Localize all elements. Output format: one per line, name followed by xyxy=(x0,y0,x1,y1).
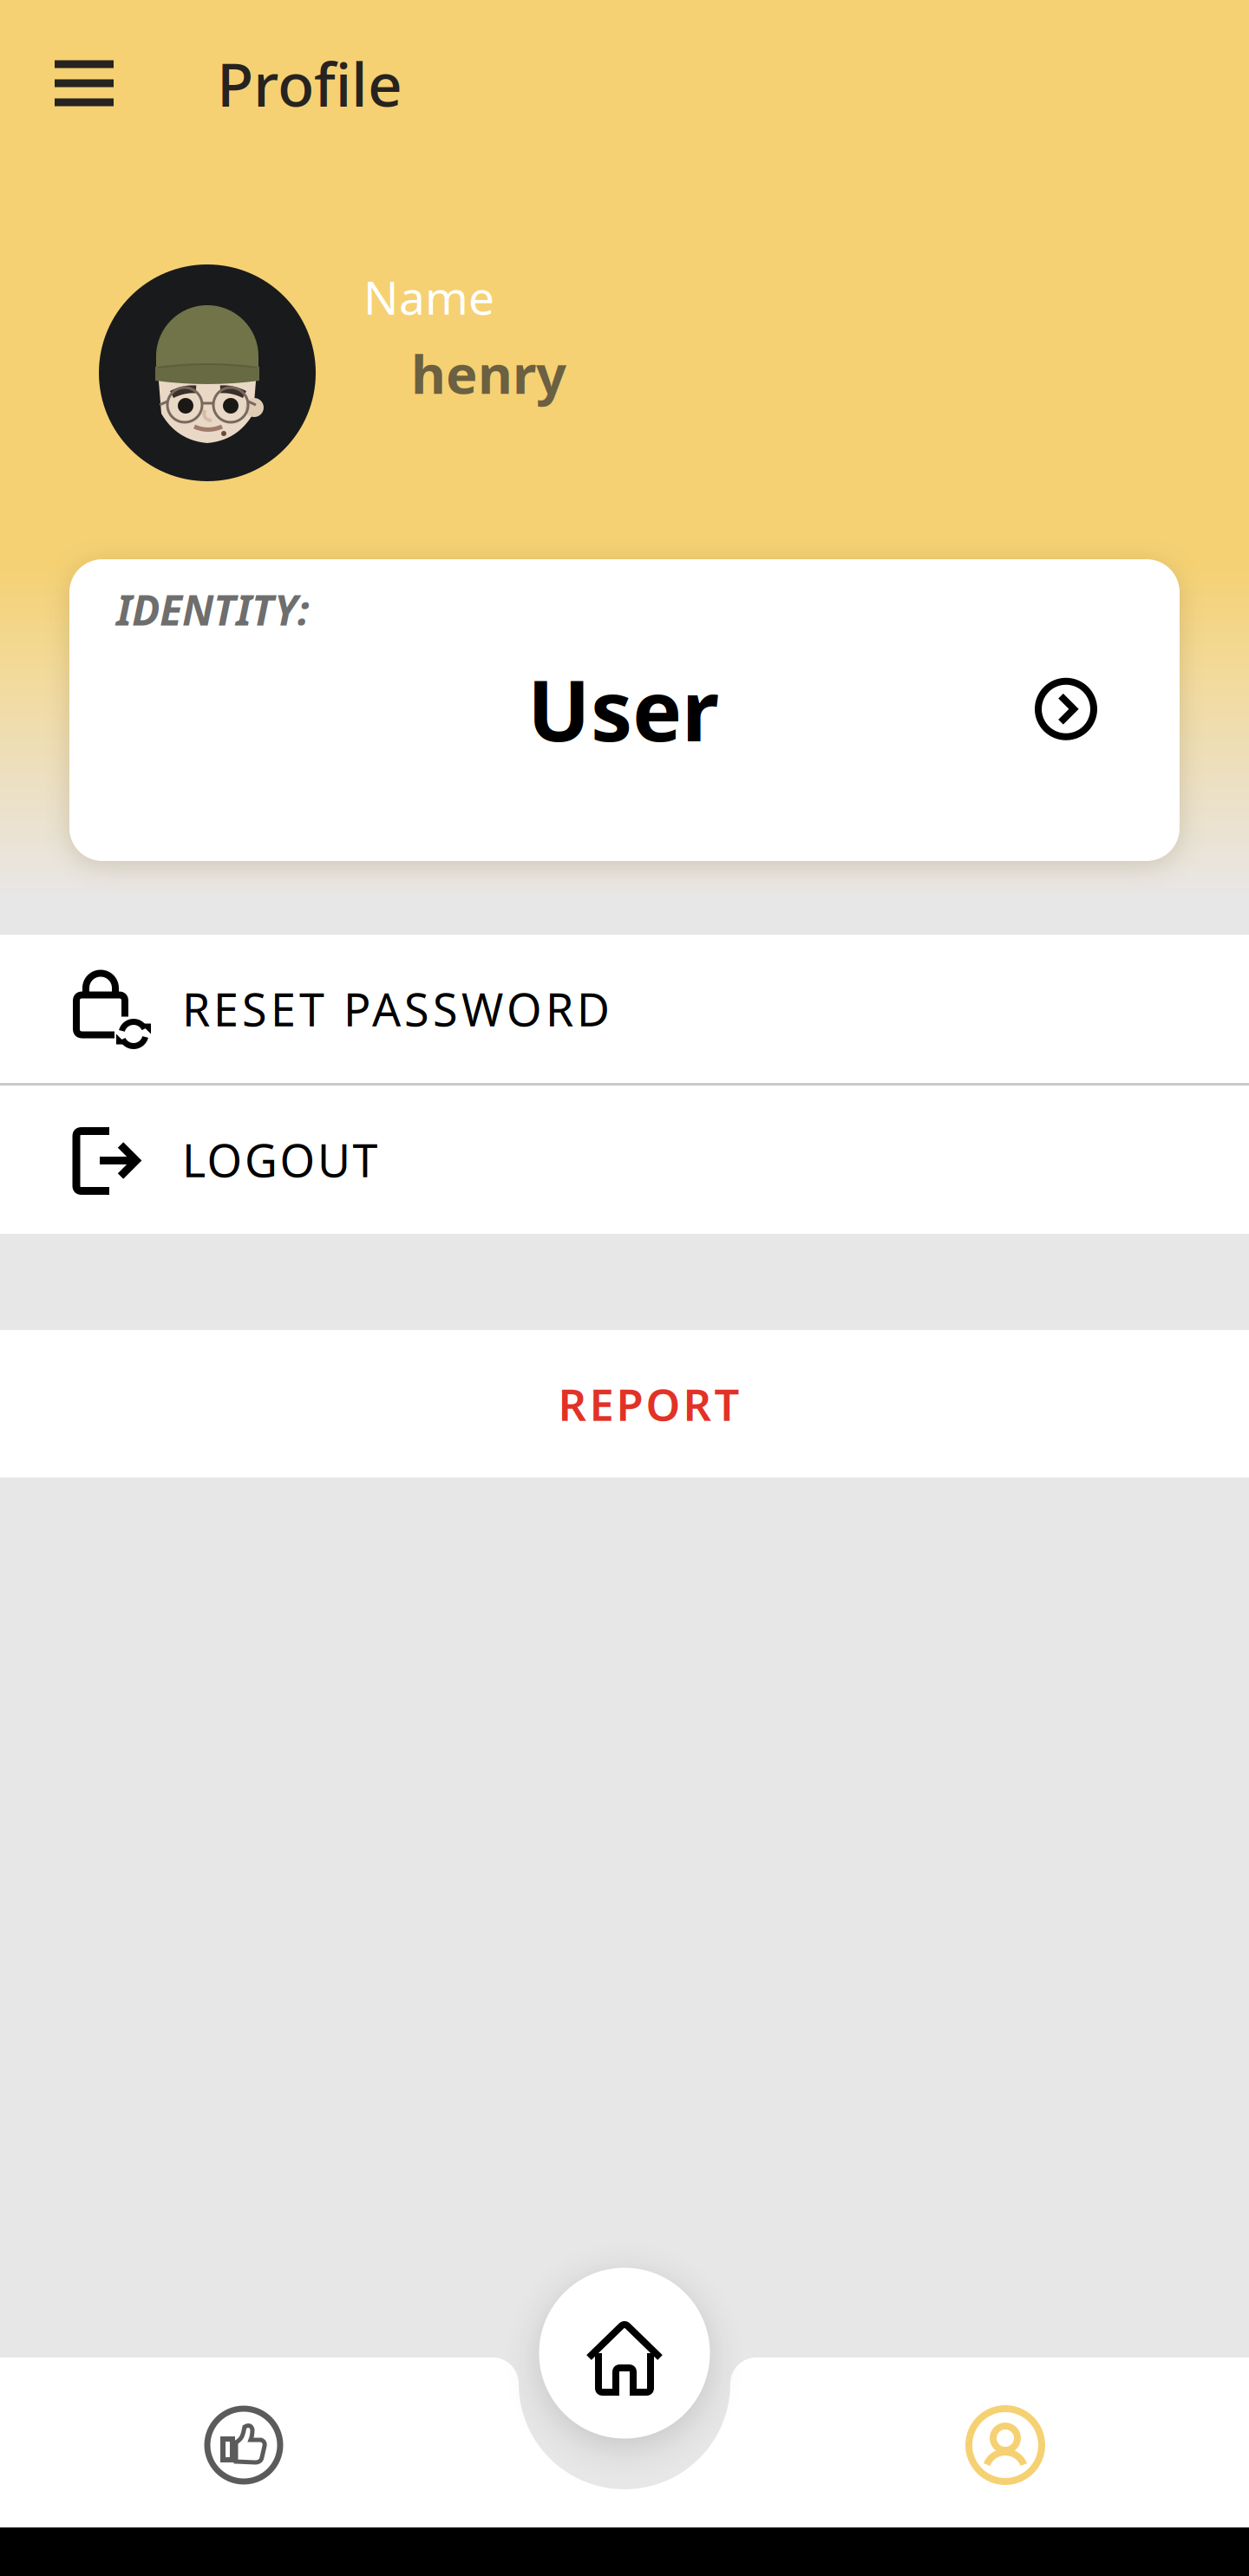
staticText: Profile xyxy=(217,43,402,123)
staticText: Name xyxy=(363,266,494,328)
button[interactable]: IDENTITY: xyxy=(0,559,1249,861)
staticText: RESET PASSWORD xyxy=(182,979,610,1039)
staticText: henry xyxy=(411,338,566,409)
button[interactable]: RESET PASSWORD xyxy=(0,935,1249,1083)
button[interactable]: REPORT xyxy=(0,1330,1249,1477)
button[interactable]: Home xyxy=(512,2240,737,2466)
button[interactable]: Menu xyxy=(28,31,141,135)
button[interactable]: Profile xyxy=(762,2358,1249,2527)
staticText: LOGOUT xyxy=(182,1130,378,1190)
staticText: User xyxy=(527,654,719,764)
staticText: IDENTITY: xyxy=(116,582,310,637)
button[interactable]: LOGOUT xyxy=(0,1086,1249,1234)
staticText: REPORT xyxy=(558,1375,739,1433)
button[interactable]: Likes xyxy=(0,2358,487,2527)
